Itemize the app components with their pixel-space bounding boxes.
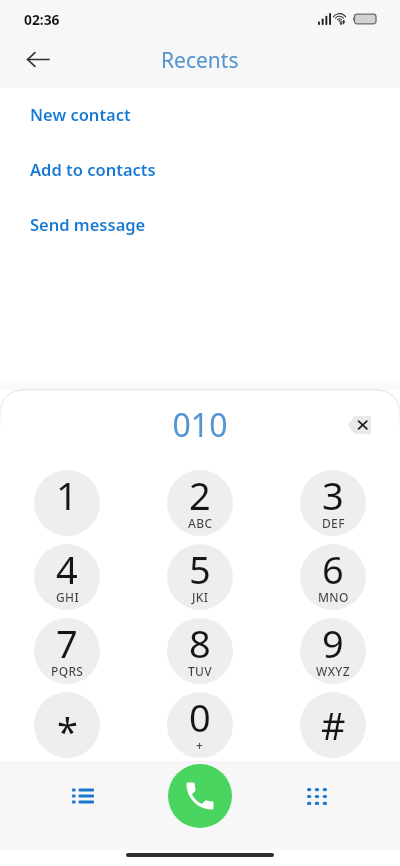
staticText: 2: [189, 470, 211, 521]
button[interactable]: Dialpad: [287, 766, 347, 826]
button[interactable]: 4: [34, 544, 100, 610]
button[interactable]: Call log: [53, 766, 113, 826]
button[interactable]: 2: [167, 470, 233, 536]
staticText: 010: [0, 403, 400, 447]
button[interactable]: 9: [300, 618, 366, 684]
staticText: 02:36: [24, 10, 60, 29]
staticText: GHI: [56, 589, 79, 605]
staticText: JKI: [192, 589, 209, 605]
staticText: 1: [56, 470, 78, 521]
staticText: 7: [56, 618, 78, 669]
staticText: New contact: [30, 103, 131, 125]
button[interactable]: 3: [300, 470, 366, 536]
staticText: 6: [322, 544, 344, 595]
staticText: +: [196, 737, 204, 753]
staticText: 9: [322, 618, 344, 669]
staticText: Recents: [161, 46, 239, 75]
staticText: *: [57, 705, 78, 757]
staticText: TUV: [188, 663, 213, 679]
staticText: 5: [189, 544, 211, 595]
staticText: MNO: [318, 589, 349, 605]
staticText: Send message: [30, 213, 146, 235]
staticText: 8: [189, 618, 211, 669]
staticText: ABC: [188, 515, 213, 531]
button[interactable]: 7: [34, 618, 100, 684]
button[interactable]: 1: [34, 470, 100, 536]
staticText: WXYZ: [316, 663, 350, 679]
button[interactable]: 0: [167, 692, 233, 758]
button[interactable]: New contact: [0, 86, 400, 141]
staticText: 4: [56, 544, 78, 595]
button[interactable]: Back: [16, 37, 60, 81]
staticText: DEF: [322, 515, 345, 531]
staticText: 3: [322, 470, 344, 521]
button[interactable]: 6: [300, 544, 366, 610]
button[interactable]: Add to contacts: [0, 141, 400, 196]
button[interactable]: Delete: [342, 408, 376, 442]
staticText: Add to contacts: [30, 158, 156, 180]
staticText: 0: [189, 692, 211, 743]
staticText: #: [321, 699, 346, 751]
button[interactable]: Send message: [0, 196, 400, 251]
button[interactable]: 5: [167, 544, 233, 610]
button[interactable]: *: [34, 692, 100, 758]
button[interactable]: #: [300, 692, 366, 758]
staticText: PQRS: [51, 663, 84, 679]
button[interactable]: Call: [168, 764, 232, 828]
button[interactable]: 8: [167, 618, 233, 684]
